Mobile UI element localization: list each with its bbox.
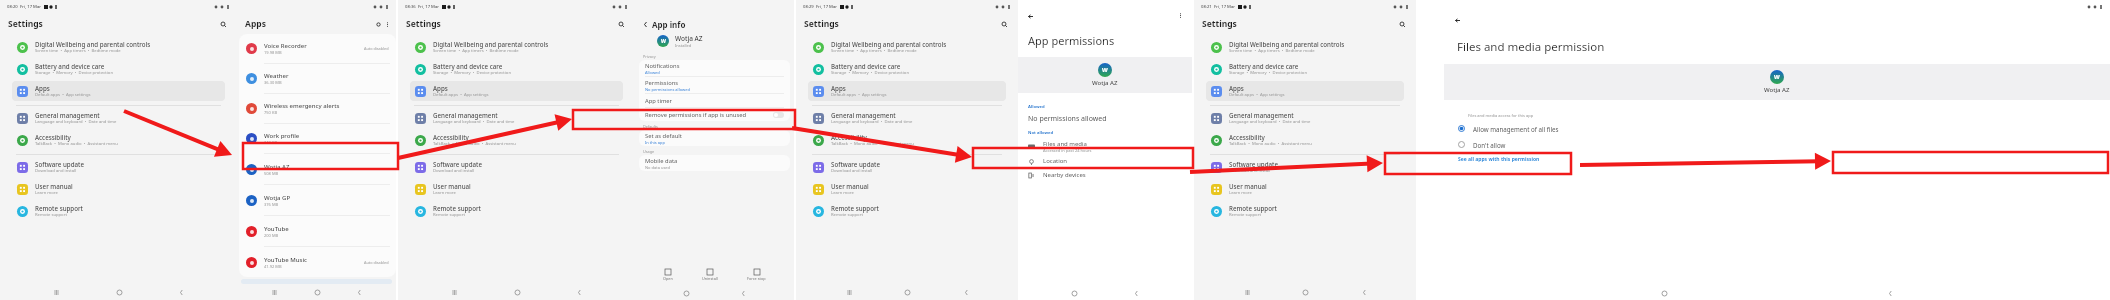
staticText: Wireless emergency alerts [264,102,340,110]
staticText: Default apps • App settings [1229,92,1285,98]
button[interactable]: Apps [12,81,225,101]
button[interactable]: Search apps [373,19,383,29]
button[interactable]: General management [12,108,225,128]
button[interactable]: Home [1068,287,1080,299]
button[interactable]: User manual [410,179,623,199]
button[interactable]: Notifications [639,60,790,76]
button[interactable]: Search [217,18,229,30]
button[interactable]: Back [1452,15,1462,25]
button[interactable]: Uninstall [701,268,719,282]
button[interactable]: Battery and device care [410,59,623,79]
staticText: Apps [433,84,448,92]
staticText: Language and keyboard • Date and time [831,119,913,125]
button[interactable]: Remote support [410,201,623,221]
staticText: Accessibility [831,133,867,141]
button[interactable]: Home [901,286,913,298]
button[interactable]: Home [1299,286,1311,298]
button[interactable]: User manual [808,179,1006,199]
button[interactable]: Apps [1206,81,1404,101]
button[interactable]: App timer [639,94,790,107]
button[interactable]: Home [511,286,523,298]
button[interactable]: Software update [410,157,623,177]
button[interactable]: Force stop [746,268,767,282]
button[interactable]: Accessibility [808,130,1006,150]
button[interactable]: Work profile [239,124,396,153]
button[interactable]: Digital Wellbeing and parental controls [808,37,1006,57]
button[interactable]: Software update [808,157,1006,177]
button[interactable]: Battery and device care [808,59,1006,79]
button[interactable]: More options [383,20,392,29]
button[interactable]: YouTube [239,216,396,246]
button[interactable]: Recents [1241,286,1253,298]
button[interactable]: Remove permissions if app is unused [639,108,790,121]
button[interactable]: Back [1884,287,1896,299]
staticText: Software update [433,160,482,168]
button[interactable]: Battery and device care [1206,59,1404,79]
button[interactable]: Recents [50,286,62,298]
button[interactable]: Allow management of all files [1444,122,2110,135]
button[interactable]: Nearby devices [1018,168,1192,182]
button[interactable] [773,112,784,118]
button[interactable]: User manual [12,179,225,199]
staticText: Wotja AZ [264,163,290,171]
button[interactable]: Remote support [808,201,1006,221]
button[interactable]: Weather [239,64,396,93]
button[interactable]: Search [1396,18,1408,30]
button[interactable]: Back [175,286,187,298]
button[interactable]: See all apps with this permission [1458,156,1540,163]
staticText: Remote support [1229,212,1261,218]
button[interactable]: Back [573,286,585,298]
button[interactable]: Don't allow [1444,138,2110,151]
button[interactable]: Software update [12,157,225,177]
staticText: App info [652,19,686,30]
button[interactable]: Battery and device care [12,59,225,79]
button[interactable]: User manual [1206,179,1404,199]
button[interactable]: Permissions [639,77,790,93]
staticText: Digital Wellbeing and parental controls [433,40,549,48]
button[interactable]: Digital Wellbeing and parental controls [12,37,225,57]
button[interactable]: Recents [268,286,280,298]
button[interactable]: Recents [448,286,460,298]
button[interactable]: Files and media [1018,138,1192,154]
button[interactable]: Back [1358,286,1370,298]
button[interactable]: Recents [843,286,855,298]
button[interactable]: Open [662,268,674,282]
staticText: Remove permissions if app is unused [645,111,746,119]
button[interactable]: Back [1130,287,1142,299]
button[interactable]: Remote support [1206,201,1404,221]
button[interactable]: YouTube Music [239,247,396,277]
button[interactable]: Home [113,286,125,298]
button[interactable]: Accessibility [410,130,623,150]
button[interactable]: General management [410,108,623,128]
button[interactable]: Back [353,286,365,298]
button[interactable]: Search [615,18,627,30]
button[interactable]: Wireless emergency alerts [239,94,396,123]
button[interactable]: Wotja AZ [239,154,396,184]
button[interactable]: General management [808,108,1006,128]
button[interactable]: Home [680,287,692,299]
button[interactable]: Back [640,19,650,29]
button[interactable]: Voice Recorder [239,34,396,63]
button[interactable]: Accessibility [1206,130,1404,150]
button[interactable]: Apps [410,81,623,101]
button[interactable]: Accessibility [12,130,225,150]
button[interactable]: Software update [1206,157,1404,177]
button[interactable]: Remote support [12,201,225,221]
button[interactable]: Search [998,18,1010,30]
staticText: Language and keyboard • Date and time [35,119,117,125]
staticText: See all apps with this permission [1458,156,1540,163]
button[interactable]: Back [960,286,972,298]
button[interactable]: General management [1206,108,1404,128]
button[interactable]: Back [737,287,749,299]
button[interactable]: Mobile data [639,155,790,171]
button[interactable]: Location [1018,154,1192,168]
button[interactable]: Digital Wellbeing and parental controls [1206,37,1404,57]
button[interactable]: Apps [808,81,1006,101]
button[interactable]: More options [1176,11,1185,20]
button[interactable]: Set as default [639,130,790,146]
button[interactable]: Home [1658,287,1670,299]
button[interactable]: Back [1025,11,1035,21]
button[interactable]: Home [311,286,323,298]
button[interactable]: Wotja GP [239,185,396,215]
button[interactable]: Digital Wellbeing and parental controls [410,37,623,57]
